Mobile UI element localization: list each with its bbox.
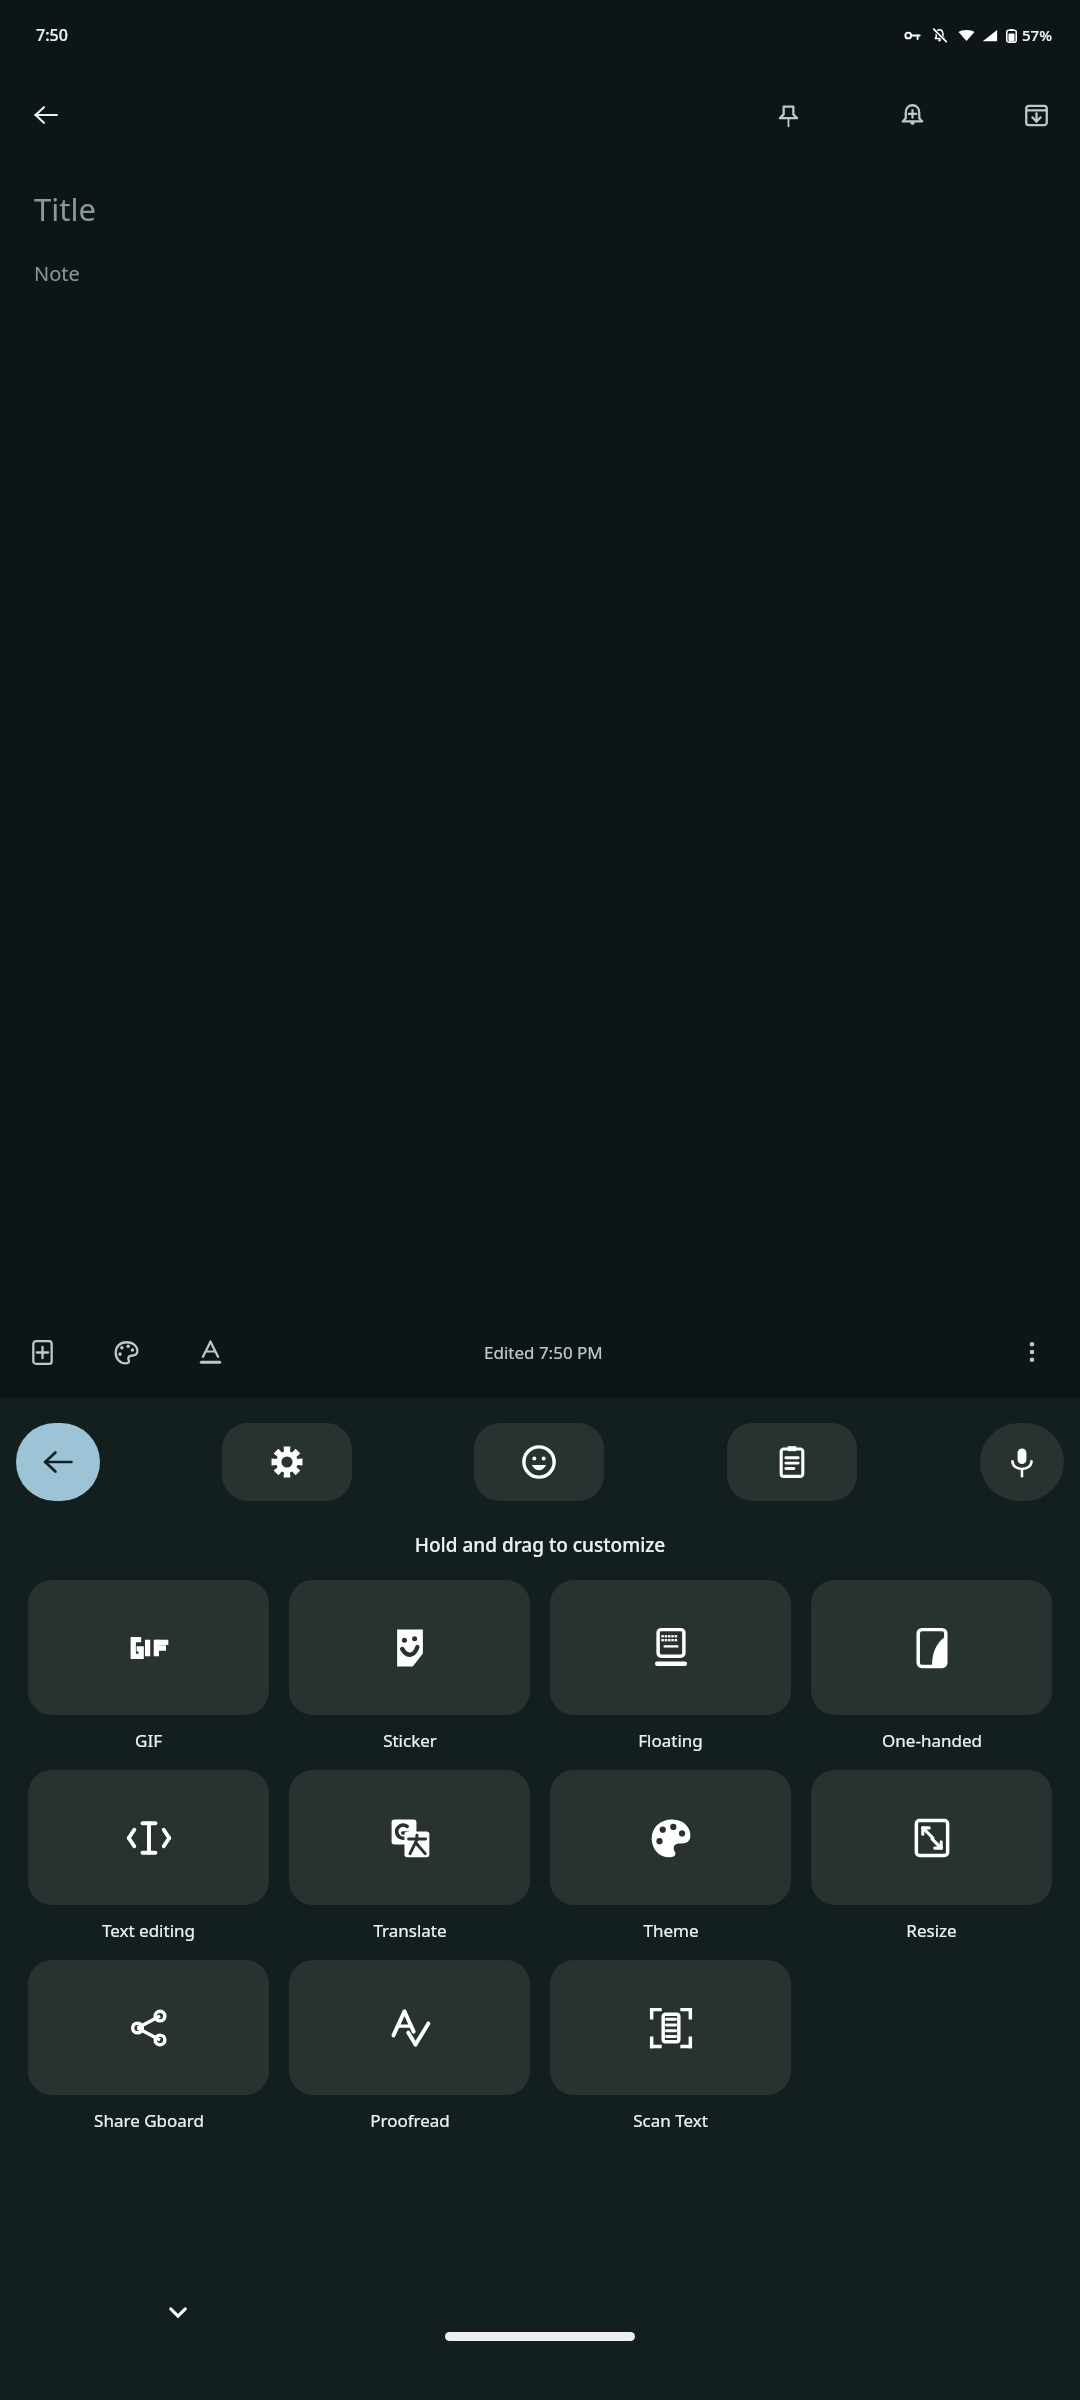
button[interactable]: Pin: [762, 89, 814, 141]
button[interactable]: Formatting: [184, 1326, 236, 1378]
staticText: Share Gboard: [94, 2109, 204, 2132]
staticText: Scan Text: [633, 2109, 708, 2132]
staticText: Translate: [373, 1919, 447, 1942]
button[interactable]: [550, 1580, 791, 1715]
button[interactable]: [811, 1580, 1052, 1715]
staticText: 57%: [1022, 25, 1052, 45]
button[interactable]: Back to keyboard: [16, 1423, 100, 1501]
staticText: Theme: [643, 1919, 699, 1942]
button[interactable]: Collapse keyboard: [150, 2284, 206, 2340]
button[interactable]: Clipboard: [727, 1423, 857, 1501]
button[interactable]: [550, 1770, 791, 1905]
button[interactable]: [550, 1960, 791, 2095]
staticText: GIF: [135, 1729, 162, 1752]
button[interactable]: [811, 1770, 1052, 1905]
button[interactable]: [28, 1960, 269, 2095]
button[interactable]: Add: [16, 1326, 68, 1378]
button[interactable]: Voice input: [980, 1423, 1064, 1501]
button[interactable]: [28, 1770, 269, 1905]
staticText: Floating: [638, 1729, 703, 1752]
staticText: 7:50: [36, 24, 68, 46]
staticText: Edited 7:50 PM: [484, 1341, 603, 1364]
staticText: Hold and drag to customize: [0, 1532, 1080, 1558]
staticText: Text editing: [102, 1919, 195, 1942]
button[interactable]: Note: [34, 260, 80, 287]
button[interactable]: More options: [1006, 1326, 1058, 1378]
button[interactable]: Title: [34, 188, 96, 230]
button[interactable]: [28, 1580, 269, 1715]
button[interactable]: Back: [18, 87, 74, 143]
button[interactable]: Background options: [100, 1326, 152, 1378]
button[interactable]: Emoji: [474, 1423, 604, 1501]
button[interactable]: Archive: [1010, 89, 1062, 141]
staticText: Resize: [906, 1919, 957, 1942]
button[interactable]: [289, 1960, 530, 2095]
button[interactable]: Settings: [222, 1423, 352, 1501]
button[interactable]: Add reminder: [886, 89, 938, 141]
staticText: One-handed: [882, 1729, 982, 1752]
button[interactable]: [289, 1770, 530, 1905]
button[interactable]: [289, 1580, 530, 1715]
staticText: Sticker: [383, 1729, 437, 1752]
staticText: Proofread: [370, 2109, 450, 2132]
